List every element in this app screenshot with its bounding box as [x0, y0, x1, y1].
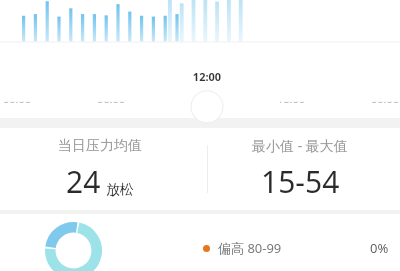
staticText: 15-54 — [261, 161, 340, 202]
button[interactable]: Timeline scrubber — [0, 88, 400, 118]
staticText: 放松 — [106, 181, 134, 199]
staticText: 0% — [370, 239, 389, 257]
button[interactable]: Stress distribution chart — [45, 222, 149, 271]
staticText: 最小值 - 最大值 — [252, 136, 348, 155]
button[interactable]: 最小值 - 最大值 — [200, 128, 400, 210]
staticText: 00:00 — [3, 91, 32, 106]
staticText: 当日压力均值 — [58, 137, 142, 155]
staticText: 24 — [66, 161, 101, 202]
staticText: 偏高 80-99 — [218, 239, 282, 257]
button[interactable]: 偏高 80-99 — [203, 239, 389, 257]
staticText: 06:00 — [97, 91, 126, 106]
button[interactable]: 00:00 — [0, 0, 400, 118]
staticText: 18:00 — [277, 91, 306, 106]
button[interactable]: 当日压力均值 — [0, 128, 200, 210]
staticText: 12:00 — [182, 69, 232, 84]
staticText: 00:00 — [371, 91, 400, 106]
